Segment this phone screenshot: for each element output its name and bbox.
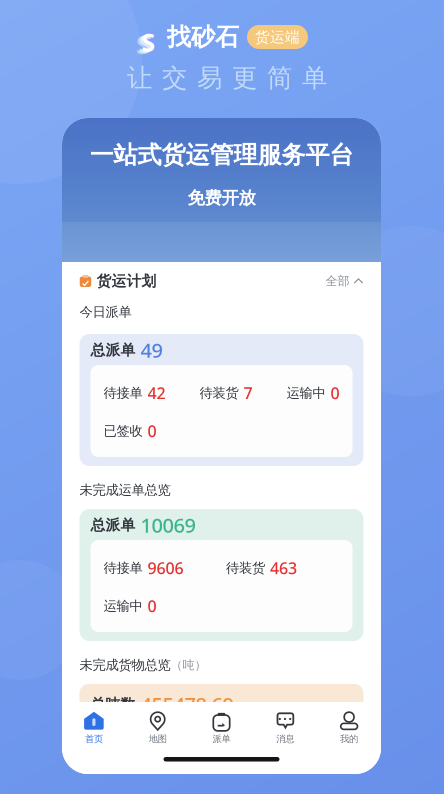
button[interactable]: 货运计划 xyxy=(62,268,381,294)
staticText: 待接单 xyxy=(103,560,142,576)
staticText: 待装货 xyxy=(226,560,265,576)
staticText: 9606 xyxy=(147,557,183,579)
button[interactable]: 消息 xyxy=(253,706,317,750)
staticText: 42 xyxy=(147,382,165,404)
staticText: 找砂石 xyxy=(167,22,239,52)
staticText: 货运端 xyxy=(255,28,300,46)
button[interactable]: 我的 xyxy=(317,706,381,750)
staticText: 463 xyxy=(270,557,297,579)
staticText: 455478.69 xyxy=(140,691,233,718)
staticText: 免费开放 xyxy=(187,187,255,209)
staticText: 运输中 xyxy=(103,598,142,614)
staticText: 待接单 xyxy=(103,385,142,401)
staticText: 让交易更简单 xyxy=(127,62,327,93)
staticText: 0 xyxy=(330,382,339,404)
button[interactable]: 首页 xyxy=(62,706,126,750)
staticText: 49 xyxy=(140,337,162,363)
staticText: 未完成货物总览 xyxy=(79,657,170,673)
staticText: 消息 xyxy=(276,733,294,745)
staticText: 我的 xyxy=(340,733,358,745)
staticText: 7 xyxy=(243,382,252,404)
staticText: 0 xyxy=(147,420,156,442)
button[interactable]: 地图 xyxy=(126,706,190,750)
staticText: S xyxy=(141,25,155,59)
staticText: 派单 xyxy=(212,733,230,745)
staticText: 一站式货运管理服务平台 xyxy=(89,140,353,170)
staticText: 总派单 xyxy=(90,341,135,359)
staticText: 全部 xyxy=(325,274,349,288)
staticText: 总吨数 xyxy=(90,695,135,713)
staticText: 地图 xyxy=(149,733,167,745)
staticText: 运输中 xyxy=(286,385,325,401)
staticText: 未完成运单总览 xyxy=(79,482,170,498)
staticText: 10069 xyxy=(140,512,195,538)
staticText: 货运计划 xyxy=(96,272,156,290)
staticText: 首页 xyxy=(85,733,103,745)
staticText: 总派单 xyxy=(90,516,135,534)
staticText: S xyxy=(136,27,150,61)
staticText: （吨） xyxy=(170,658,206,672)
staticText: 0 xyxy=(147,595,156,617)
button[interactable]: 派单 xyxy=(190,706,253,750)
staticText: 已签收 xyxy=(103,423,142,439)
staticText: 今日派单 xyxy=(79,304,131,320)
staticText: S xyxy=(139,26,153,60)
staticText: 待装货 xyxy=(199,385,238,401)
